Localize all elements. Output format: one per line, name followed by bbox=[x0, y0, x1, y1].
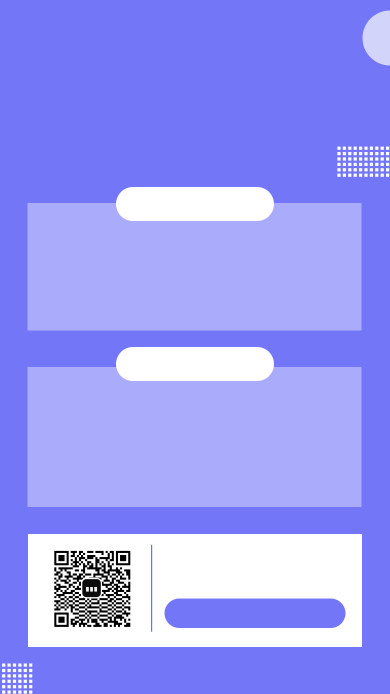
button[interactable]: Loading pass bbox=[27, 347, 361, 507]
button[interactable]: Continue bbox=[164, 598, 345, 628]
button[interactable]: Loading ticket bbox=[27, 187, 361, 330]
